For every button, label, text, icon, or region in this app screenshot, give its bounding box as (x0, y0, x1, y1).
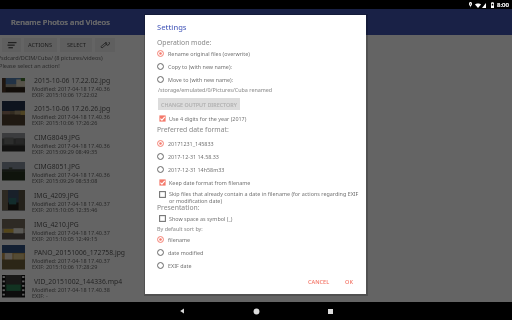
staticText: 2017-12-31 14h58m33 (168, 166, 225, 173)
button[interactable]: IMG_4209.JPG (0, 187, 512, 216)
staticText: Modified: 2017-04-18 17.40.37 (32, 200, 110, 207)
button[interactable]: Recents (293, 302, 367, 320)
staticText: Keep date format from filename (169, 179, 251, 186)
button[interactable]: IMG_4210.JPG (0, 216, 512, 245)
button[interactable]: OK (342, 275, 356, 289)
staticText: IMG_4210.JPG (34, 220, 79, 229)
button[interactable]: Keep date format from filename (159, 177, 251, 188)
staticText: VID_20151002_144336.mp4 (34, 277, 123, 286)
staticText: Presentation: (157, 203, 200, 212)
staticText: By default sort by: (157, 225, 203, 232)
button[interactable]: filename (157, 234, 191, 245)
staticText: Please select an action! (0, 62, 60, 70)
button[interactable]: Sort (2, 38, 21, 52)
staticText: Modified: 2017-04-18 17.40.36 (32, 113, 110, 120)
staticText: Modified: 2017-04-18 17.40.38 (32, 286, 110, 293)
staticText: EXIF: 2015:10:05 12:49:15 (32, 235, 98, 242)
staticText: CANCEL (308, 278, 330, 286)
staticText: /sdcard/DCIM/Cuba/ (8 pictures/videos) (0, 54, 103, 62)
button[interactable]: 2015-10-06 17.22.02.jpg (0, 72, 512, 101)
button[interactable]: SELECT (60, 38, 92, 52)
button[interactable]: Copy to (with new name): (157, 61, 232, 72)
staticText: Modified: 2017-04-18 17.40.36 (32, 85, 110, 92)
staticText: filename (168, 236, 191, 243)
staticText: CIMG8051.JPG (34, 162, 81, 171)
staticText: Modified: 2017-04-18 17.40.36 (32, 142, 110, 149)
button[interactable]: 2015-10-06 17.26.26.jpg (0, 100, 512, 129)
staticText: EXIF: 2015:10:05 12:35:46 (32, 206, 98, 213)
staticText: EXIF: 2015:10:06 17:28:29 (32, 263, 98, 270)
staticText: PANO_20151006_172758.jpg (34, 248, 125, 257)
button[interactable]: 2017-12-31 14h58m33 (157, 164, 225, 175)
staticText: EXIF: 2015:10:06 17:22:02 (32, 91, 98, 98)
staticText: Modified: 2017-04-18 17.40.37 (32, 229, 110, 236)
button[interactable]: Skip files that already contain a date i… (159, 190, 359, 204)
staticText: Move to (with new name): (168, 76, 234, 83)
staticText: Use 4 digits for the year (2017) (169, 115, 247, 122)
button[interactable]: PANO_20151006_172758.jpg (0, 244, 512, 273)
staticText: OK (345, 278, 353, 286)
staticText: ACTIONS (28, 41, 53, 49)
staticText: 2015-10-06 17.26.26.jpg (34, 104, 111, 113)
staticText: IMG_4209.JPG (34, 191, 79, 200)
staticText: Modified: 2017-04-18 17.40.37 (32, 257, 110, 264)
staticText: CIMG8049.JPG (34, 133, 81, 142)
button[interactable]: Home (219, 302, 293, 320)
button[interactable]: Move to (with new name): (157, 74, 234, 85)
staticText: SELECT (67, 41, 86, 49)
staticText: Rename Photos and Videos (11, 17, 110, 27)
staticText: EXIF: 2015:09:29 08:53:08 (32, 177, 98, 184)
button[interactable]: Rename original files (overwrite) (157, 48, 250, 59)
button[interactable]: CIMG8051.JPG (0, 158, 512, 187)
staticText: EXIF: - (32, 292, 48, 299)
staticText: Settings (157, 22, 187, 32)
staticText: /storage/emulated/0/Pictures/Cuba rename… (158, 86, 273, 93)
button[interactable]: EXIF date (157, 260, 192, 271)
button[interactable]: date modified (157, 247, 204, 258)
staticText: Copy to (with new name): (168, 63, 232, 70)
staticText: EXIF: 2015:09:29 08:49:35 (32, 148, 98, 155)
button[interactable]: VID_20151002_144336.mp4 (0, 273, 512, 302)
button[interactable]: Back (145, 302, 219, 320)
staticText: Modified: 2017-04-18 17.40.36 (32, 171, 110, 178)
staticText: 8:00 (497, 1, 509, 9)
staticText: Show space as symbol (_) (169, 215, 233, 222)
staticText: 20171231_145833 (168, 140, 214, 147)
button[interactable]: Use 4 digits for the year (2017) (159, 113, 247, 124)
staticText: date modified (168, 249, 204, 256)
staticText: Operation mode: (157, 38, 212, 47)
button[interactable]: 20171231_145833 (157, 138, 214, 149)
staticText: EXIF: 2015:10:06 17:26:26 (32, 119, 98, 126)
button[interactable]: Tools (95, 38, 115, 52)
button[interactable]: ACTIONS (24, 38, 57, 52)
staticText: EXIF date (168, 262, 192, 269)
staticText: 2015-10-06 17.22.02.jpg (34, 76, 111, 85)
button[interactable]: Show space as symbol (_) (159, 213, 233, 224)
button[interactable]: CHANGE OUTPUT DIRECTORY (158, 98, 240, 110)
staticText: Skip files that already contain a date i… (169, 190, 359, 197)
button[interactable]: CIMG8049.JPG (0, 129, 512, 158)
staticText: Rename original files (overwrite) (168, 50, 250, 57)
staticText: CHANGE OUTPUT DIRECTORY (161, 101, 237, 108)
button[interactable]: CANCEL (305, 275, 333, 289)
button[interactable]: 2017-12-31 14.58.33 (157, 151, 219, 162)
staticText: Preferred date format: (157, 125, 229, 134)
staticText: 2017-12-31 14.58.33 (168, 153, 219, 160)
staticText: or modification date) (169, 197, 223, 204)
